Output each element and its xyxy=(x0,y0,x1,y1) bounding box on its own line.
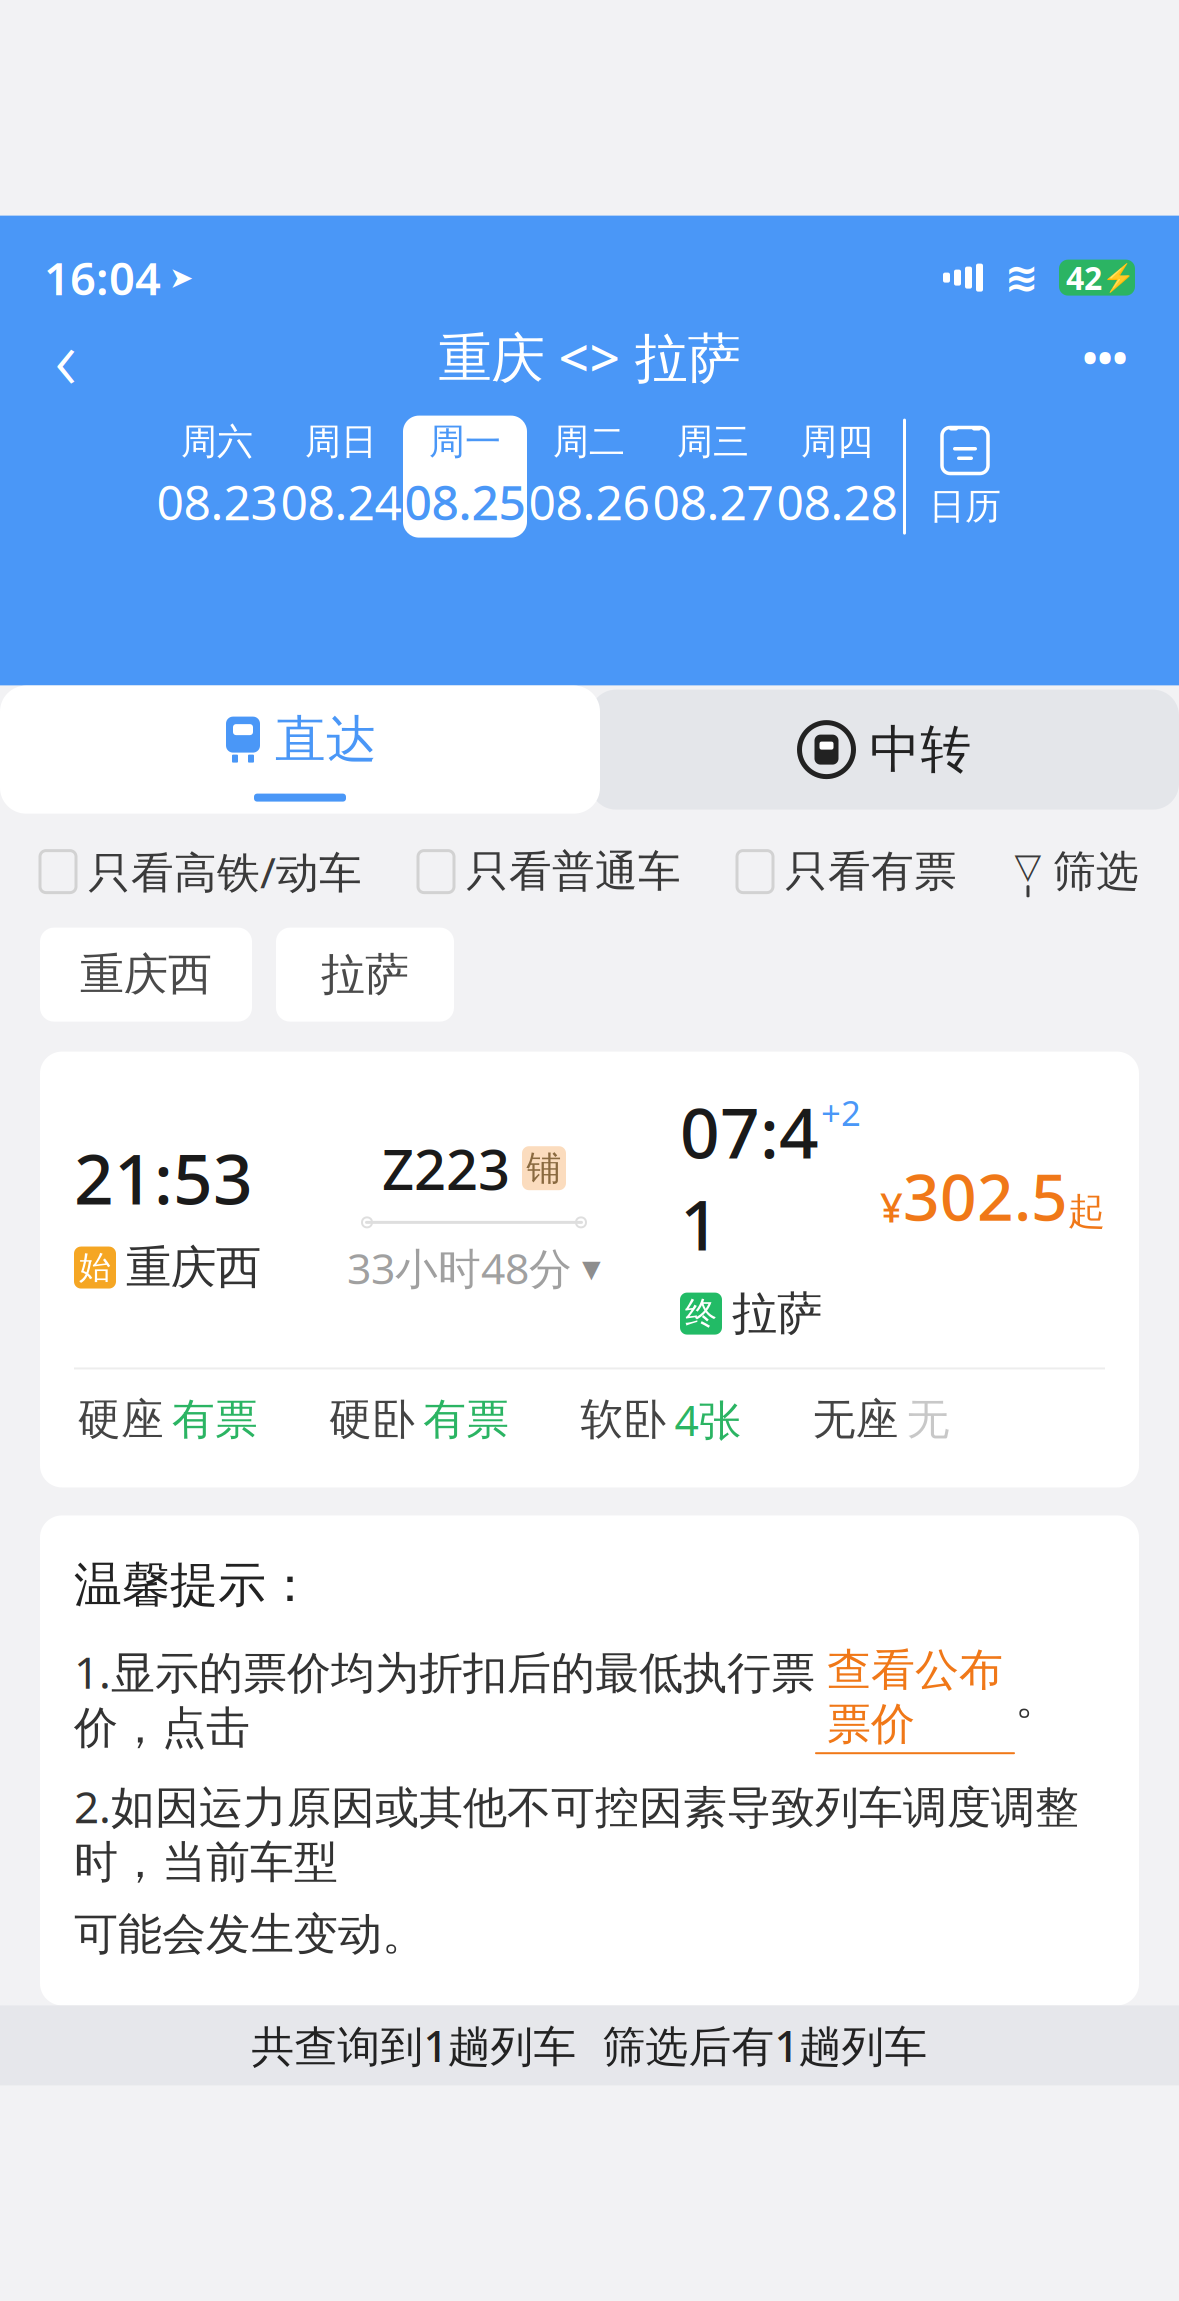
staticText: ••• xyxy=(1082,330,1127,383)
staticText: 2.如因运力原因或其他不可控因素导致列车调度调整时，当前车型 xyxy=(74,1777,1079,1889)
button[interactable]: 周日 xyxy=(279,416,403,538)
staticText: 周四 xyxy=(801,420,873,464)
staticText: 无座 xyxy=(813,1393,899,1446)
staticText: 可能会发生变动。 xyxy=(74,1907,426,1961)
staticText: 只看普通车 xyxy=(466,845,681,898)
staticText: 周六 xyxy=(181,420,253,464)
staticText: ▽ xyxy=(1014,846,1041,885)
staticText: 4张 xyxy=(674,1391,741,1448)
button[interactable]: 只看高铁/动车 xyxy=(40,843,362,900)
staticText: 只看有票 xyxy=(785,845,957,898)
staticText: ‹ xyxy=(54,300,77,413)
staticText: ≋ xyxy=(1005,255,1039,300)
button[interactable]: 周二 xyxy=(527,416,651,538)
staticText: ⚡ xyxy=(1102,262,1135,293)
staticText: +2 xyxy=(821,1090,861,1136)
staticText: 周一 xyxy=(429,420,501,464)
staticText: 重庆西 xyxy=(126,1240,261,1295)
staticText: 筛选后有1趟列车 xyxy=(576,2017,927,2074)
staticText: 终 xyxy=(685,1294,717,1333)
staticText: 筛选 xyxy=(1053,845,1139,898)
staticText: 周日 xyxy=(305,420,377,464)
staticText: ▾ xyxy=(582,1246,601,1289)
button[interactable]: 周三 xyxy=(651,416,775,538)
staticText: 08.25 xyxy=(404,470,525,534)
button[interactable]: 周一 xyxy=(403,416,527,538)
staticText: 日历 xyxy=(929,484,1001,529)
button[interactable]: 中转 xyxy=(590,690,1179,810)
staticText: 07:41 xyxy=(680,1086,819,1270)
staticText: 16:04 xyxy=(44,247,161,308)
staticText: 直达 xyxy=(275,708,377,771)
staticText: 起 xyxy=(1068,1189,1105,1235)
button[interactable]: ▽ xyxy=(1013,845,1139,898)
button[interactable]: 更多 xyxy=(1057,319,1153,395)
staticText: 温馨提示： xyxy=(74,1555,314,1614)
button[interactable]: 返回 xyxy=(26,319,106,395)
staticText: 有票 xyxy=(423,1393,509,1446)
staticText: 共查询到1趟列车 xyxy=(251,2017,576,2074)
staticText: 33小时48分 xyxy=(347,1239,572,1296)
staticText: 302.5 xyxy=(903,1153,1068,1238)
button[interactable]: 日历 xyxy=(906,416,1024,538)
staticText: 中转 xyxy=(869,718,971,781)
staticText: 08.23 xyxy=(156,470,277,534)
button[interactable]: 拉萨 xyxy=(276,928,454,1022)
staticText: ➤ xyxy=(169,261,194,294)
staticText: 08.27 xyxy=(652,470,773,534)
staticText: 重庆 <> 拉萨 xyxy=(438,321,740,392)
staticText: 只看高铁/动车 xyxy=(88,843,362,900)
staticText: 查看公布票价 xyxy=(827,1643,1003,1751)
staticText: 周二 xyxy=(553,420,625,464)
staticText: 硬座 xyxy=(78,1393,164,1446)
button[interactable]: 直达 xyxy=(0,686,600,814)
staticText: 周三 xyxy=(677,420,749,464)
staticText: 硬卧 xyxy=(329,1393,415,1446)
staticText: 拉萨 xyxy=(321,948,409,1002)
staticText: 拉萨 xyxy=(732,1286,822,1341)
staticText: 08.24 xyxy=(280,470,401,534)
button[interactable]: 周六 xyxy=(155,416,279,538)
staticText: 铺 xyxy=(526,1147,561,1189)
staticText: 始 xyxy=(79,1248,111,1287)
button[interactable]: 21:53 xyxy=(40,1052,1139,1487)
button[interactable]: 只看有票 xyxy=(737,845,957,898)
button[interactable]: 只看普通车 xyxy=(418,845,681,898)
button[interactable]: 周四 xyxy=(775,416,899,538)
staticText: 无 xyxy=(907,1393,950,1446)
button[interactable]: 查看公布票价 xyxy=(815,1643,1015,1754)
staticText: 有票 xyxy=(172,1393,258,1446)
staticText: ¥ xyxy=(880,1180,903,1233)
staticText: 。 xyxy=(1015,1672,1059,1726)
staticText: 21:53 xyxy=(74,1132,253,1224)
staticText: 1.显示的票价均为折扣后的最低执行票价，点击 xyxy=(74,1642,815,1755)
staticText: 08.28 xyxy=(776,470,897,534)
staticText: 08.26 xyxy=(528,470,649,534)
staticText: 42 xyxy=(1066,256,1102,299)
staticText: 重庆西 xyxy=(80,948,212,1002)
staticText: 软卧 xyxy=(580,1393,666,1446)
staticText: Z223 xyxy=(382,1131,510,1205)
button[interactable]: 重庆西 xyxy=(40,928,252,1022)
